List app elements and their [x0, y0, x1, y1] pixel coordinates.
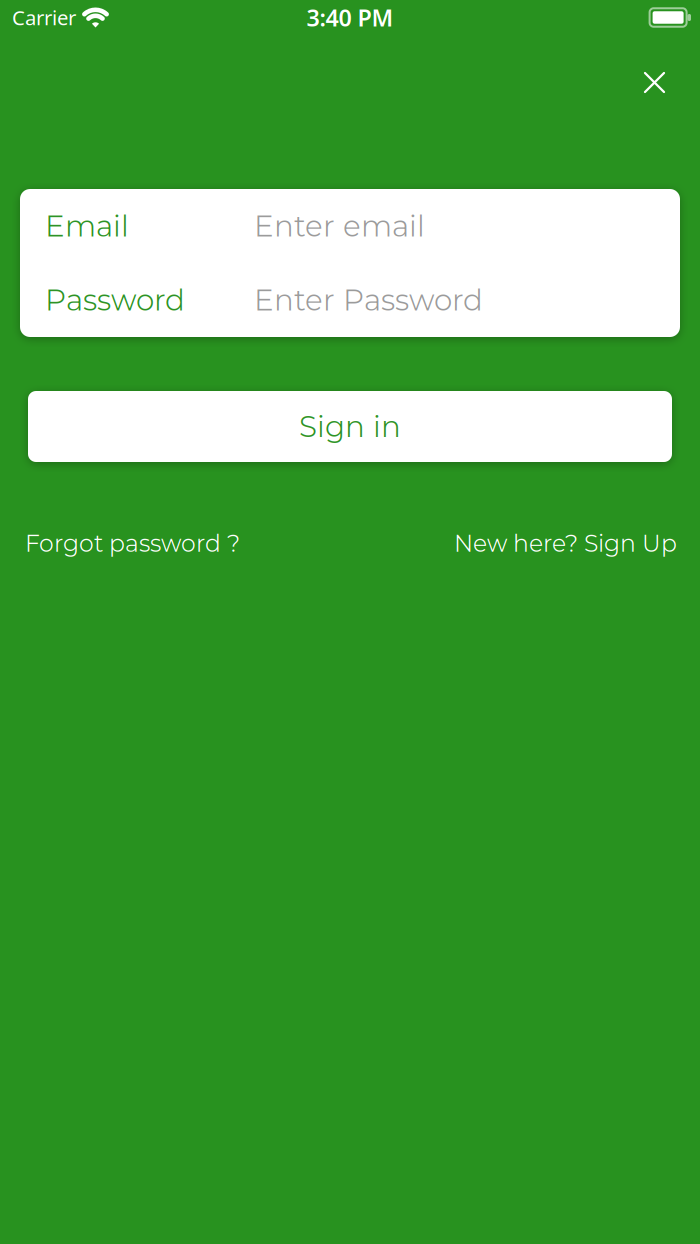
button[interactable]: Close	[637, 65, 672, 100]
staticText: 3:40 PM	[306, 2, 393, 33]
button[interactable]: New here? Sign Up	[454, 529, 677, 558]
staticText: Forgot password ?	[25, 529, 240, 558]
staticText: New here? Sign Up	[454, 529, 677, 558]
staticText: Enter Password	[254, 282, 483, 318]
staticText: Carrier	[12, 4, 76, 31]
staticText: Email	[45, 208, 129, 244]
staticText: Password	[45, 282, 185, 318]
staticText: Enter email	[254, 208, 425, 244]
button[interactable]: Forgot password ?	[25, 529, 240, 558]
staticText: Sign in	[299, 409, 401, 444]
button[interactable]: Sign in	[28, 391, 672, 462]
